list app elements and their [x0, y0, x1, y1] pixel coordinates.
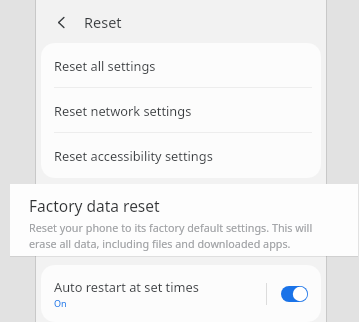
button[interactable]: Factory data reset	[10, 184, 358, 256]
button[interactable]: Reset accessibility settings	[41, 133, 321, 177]
button[interactable]: Auto restart at set times	[41, 265, 321, 322]
staticText: erase all data, including files and down…	[29, 236, 291, 251]
staticText: Reset your phone to its factory default …	[29, 220, 313, 235]
staticText: Reset accessibility settings	[54, 147, 213, 164]
staticText: On	[54, 297, 67, 309]
staticText: Factory data reset	[29, 195, 160, 216]
staticText: Reset	[84, 12, 122, 32]
staticText: Auto restart at set times	[54, 278, 199, 295]
button[interactable]: Back	[48, 9, 74, 35]
staticText: Reset network settings	[54, 102, 192, 119]
button[interactable]: Auto restart toggle, on	[277, 279, 311, 309]
staticText: Reset all settings	[54, 57, 156, 74]
button[interactable]: Reset network settings	[41, 88, 321, 132]
button[interactable]: Reset all settings	[41, 43, 321, 87]
